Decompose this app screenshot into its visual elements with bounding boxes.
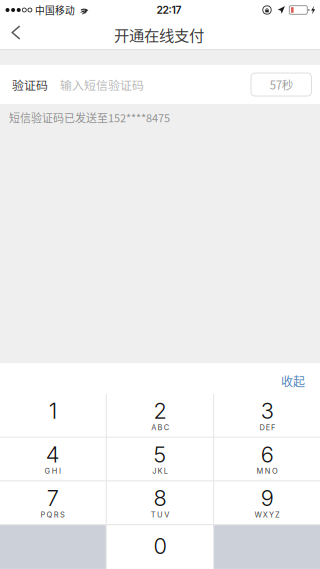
staticText: 6 xyxy=(261,441,274,468)
staticText: W xyxy=(254,510,261,519)
staticText: G xyxy=(44,467,50,476)
button[interactable]: 5 xyxy=(107,438,213,480)
staticText: 1 xyxy=(49,397,57,424)
staticText: 2 xyxy=(153,397,166,424)
button[interactable]: 7 xyxy=(0,481,106,524)
button[interactable]: 0 xyxy=(107,525,213,569)
button[interactable]: 9 xyxy=(214,481,320,524)
staticText: O xyxy=(272,467,278,476)
staticText: L xyxy=(164,467,168,476)
staticText: U xyxy=(157,510,163,519)
staticText: Z xyxy=(275,510,280,519)
staticText: 57秒 xyxy=(270,76,293,93)
staticText: F xyxy=(271,423,275,432)
staticText: I xyxy=(59,467,61,476)
staticText: 9 xyxy=(261,485,274,511)
staticText: 3 xyxy=(261,397,274,424)
staticText: 中国移动 xyxy=(35,3,75,17)
staticText: E xyxy=(266,423,270,432)
staticText: 短信验证码已发送至152****8475 xyxy=(9,110,170,125)
staticText: A xyxy=(151,423,156,432)
staticText: V xyxy=(164,510,169,519)
staticText: T xyxy=(151,510,156,519)
staticText: R xyxy=(54,510,59,519)
staticText: 验证码 xyxy=(12,76,48,93)
staticText: Q xyxy=(47,510,53,519)
button[interactable]: 57秒 xyxy=(251,73,311,96)
staticText: S xyxy=(60,510,65,519)
staticText: X xyxy=(263,510,268,519)
button[interactable]: 3 xyxy=(214,394,320,437)
staticText: D xyxy=(260,423,265,432)
button[interactable]: 收起 xyxy=(274,366,312,396)
staticText: 4 xyxy=(46,441,60,468)
staticText: C xyxy=(164,423,169,432)
button[interactable]: 1 xyxy=(0,394,106,437)
staticText: 5 xyxy=(153,441,166,468)
button[interactable]: 2 xyxy=(107,394,213,437)
staticText: B xyxy=(157,423,162,432)
staticText: 7 xyxy=(47,485,59,511)
staticText: 收起 xyxy=(281,372,305,390)
button[interactable]: 8 xyxy=(107,481,213,524)
staticText: H xyxy=(52,467,58,476)
staticText: Y xyxy=(269,510,274,519)
button[interactable]: 4 xyxy=(0,438,106,480)
staticText: N xyxy=(265,467,271,476)
button[interactable]: 返回 xyxy=(0,20,32,49)
staticText: 输入短信验证码 xyxy=(60,76,144,93)
staticText: 8 xyxy=(153,485,166,511)
staticText: 0 xyxy=(153,533,166,559)
staticText: 22:17 xyxy=(156,4,181,16)
button[interactable]: 6 xyxy=(214,438,320,480)
staticText: P xyxy=(40,510,45,519)
staticText: K xyxy=(157,467,162,476)
staticText: 开通在线支付 xyxy=(114,23,204,46)
staticText: J xyxy=(152,467,156,476)
staticText: M xyxy=(257,467,264,476)
